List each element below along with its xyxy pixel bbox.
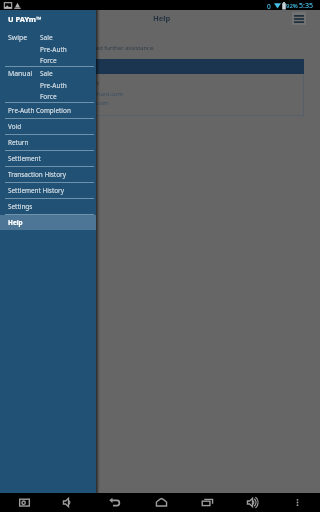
staticText: 0	[267, 2, 271, 11]
button[interactable]: Settlement History	[0, 183, 96, 198]
staticText: Web : www.upaym.com	[45, 99, 109, 107]
button[interactable]: Screenshot	[12, 493, 36, 512]
button[interactable]: More options	[285, 493, 309, 512]
staticText: Please contact us if you need further as…	[24, 44, 155, 52]
button[interactable]: Swipe	[0, 31, 36, 66]
staticText: Pre-Auth Completion	[8, 106, 71, 115]
staticText: Sale	[40, 69, 53, 78]
button[interactable]: Sale	[36, 67, 96, 79]
staticText: Pre-Auth	[40, 81, 67, 90]
staticText: Void	[8, 122, 22, 131]
button[interactable]: Void	[0, 119, 96, 134]
button[interactable]: Force	[36, 55, 96, 66]
button[interactable]: Volume down	[56, 493, 80, 512]
button[interactable]: Open navigation menu	[292, 12, 306, 25]
staticText: Force	[40, 56, 57, 65]
staticText: Swipe	[8, 33, 28, 42]
staticText: 5:35	[299, 1, 313, 11]
button[interactable]: Sale	[36, 31, 96, 43]
button[interactable]: Transaction History	[0, 167, 96, 182]
button[interactable]: Home	[149, 493, 173, 512]
staticText: Help	[8, 218, 23, 227]
staticText: Sale	[40, 33, 53, 42]
button[interactable]: Pre-Auth Completion	[0, 103, 96, 118]
staticText: Force	[40, 92, 57, 101]
button[interactable]: Help	[0, 215, 96, 230]
button[interactable]: Manual	[0, 67, 36, 102]
staticText: Contact	[78, 79, 99, 87]
staticText: Transaction History	[8, 170, 66, 179]
staticText: Settings	[8, 202, 33, 211]
staticText: Settlement History	[8, 186, 64, 195]
staticText: Help	[153, 13, 171, 23]
button[interactable]: Settlement	[0, 151, 96, 166]
button[interactable]: Pre-Auth	[36, 43, 96, 55]
staticText: Return	[8, 138, 29, 147]
staticText: 92%	[286, 2, 298, 10]
button[interactable]: Back	[102, 493, 126, 512]
button[interactable]: Settings	[0, 199, 96, 214]
staticText: E-mail : support@upaymerchant.com	[22, 90, 123, 98]
staticText: Manual	[8, 69, 33, 78]
button[interactable]: Recent apps	[195, 493, 219, 512]
button[interactable]: Force	[36, 91, 96, 102]
button[interactable]: Volume up	[240, 493, 264, 512]
staticText: U PAYm™	[8, 14, 42, 24]
staticText: Settlement	[8, 154, 41, 163]
button[interactable]: Pre-Auth	[36, 79, 96, 91]
button[interactable]: Return	[0, 135, 96, 150]
staticText: Pre-Auth	[40, 45, 67, 54]
